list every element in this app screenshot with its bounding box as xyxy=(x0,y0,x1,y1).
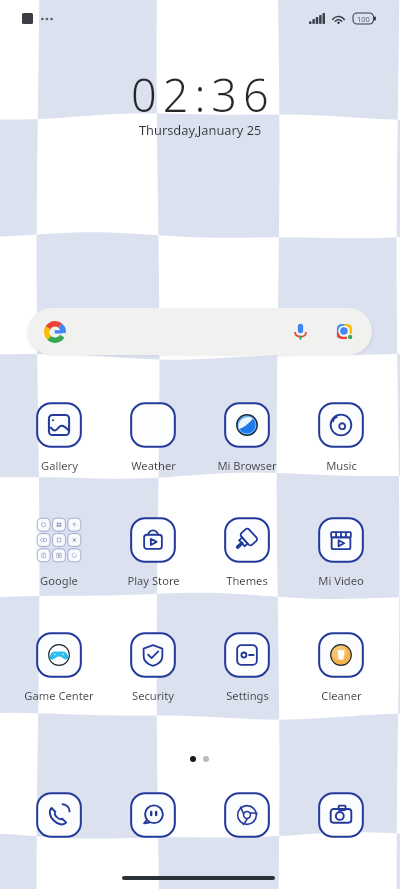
button[interactable]: Themes xyxy=(201,516,293,588)
staticText: Cleaner xyxy=(321,688,362,703)
staticText: Game Center xyxy=(24,688,94,703)
button[interactable]: Gallery xyxy=(13,401,105,473)
staticText: Themes xyxy=(226,573,268,588)
staticText: Mi Video xyxy=(318,573,364,588)
staticText: Thursday,January 25 xyxy=(139,121,262,138)
staticText: 02:36 xyxy=(131,64,275,125)
button[interactable]: Game Center xyxy=(13,631,105,703)
button[interactable]: Phone xyxy=(35,791,83,839)
staticText: Gallery xyxy=(41,458,78,473)
button[interactable]: Security xyxy=(107,631,199,703)
button[interactable]: Google xyxy=(13,516,105,588)
button[interactable]: Chrome xyxy=(223,791,271,839)
button[interactable] xyxy=(28,308,372,355)
button[interactable]: Music xyxy=(295,401,387,473)
staticText: 100 xyxy=(357,14,370,24)
staticText: Settings xyxy=(226,688,269,703)
button[interactable]: Messages xyxy=(129,791,177,839)
staticText: Music xyxy=(326,458,357,473)
button[interactable]: Mi Video xyxy=(295,516,387,588)
staticText: Play Store xyxy=(127,573,180,588)
staticText: Weather xyxy=(131,458,176,473)
button[interactable]: Cleaner xyxy=(295,631,387,703)
button[interactable]: Weather xyxy=(107,401,199,473)
button[interactable]: Camera xyxy=(317,791,365,839)
staticText: Security xyxy=(132,688,174,703)
button[interactable]: Mi Browser xyxy=(201,401,293,473)
staticText: Google xyxy=(40,573,78,588)
button[interactable]: Settings xyxy=(201,631,293,703)
staticText: Mi Browser xyxy=(217,458,277,473)
button[interactable]: Play Store xyxy=(107,516,199,588)
